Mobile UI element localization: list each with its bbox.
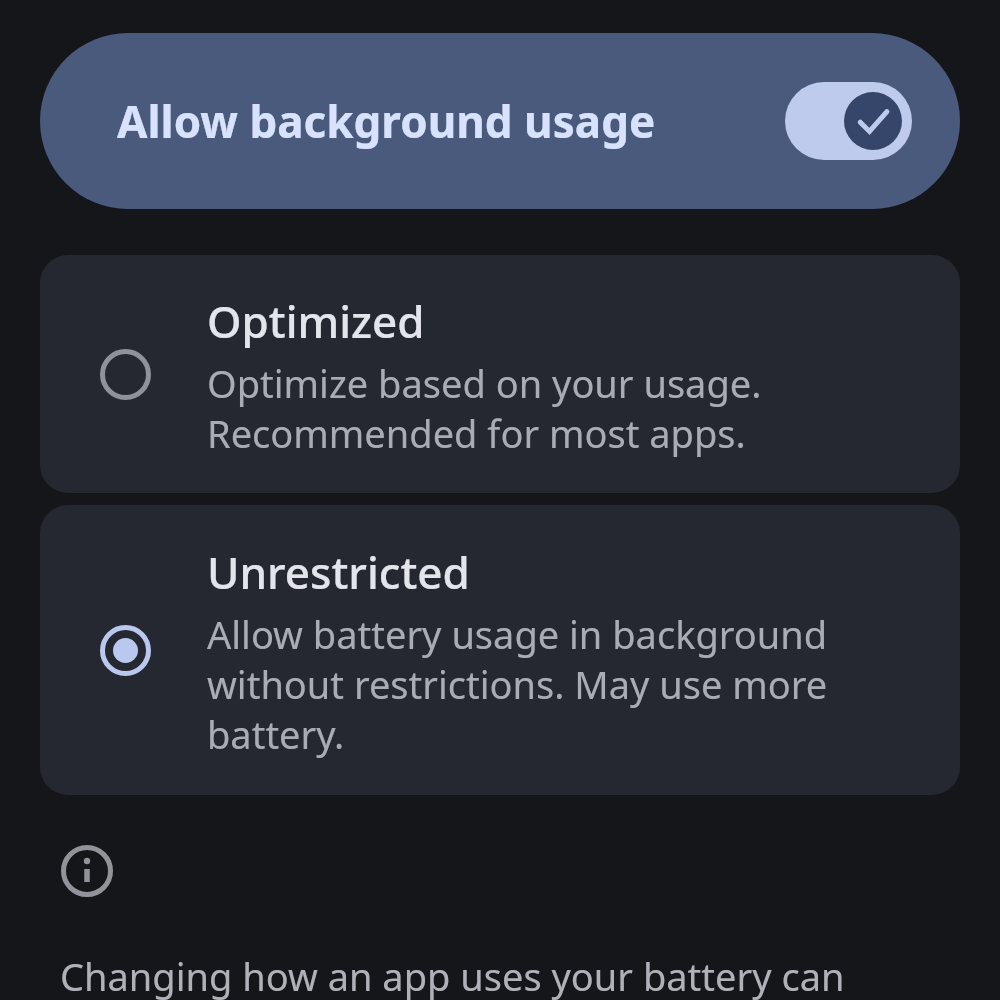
button[interactable]: Unrestricted <box>40 505 960 795</box>
staticText: Changing how an app uses your battery ca… <box>60 950 845 1000</box>
staticText: Allow background usage <box>117 91 656 151</box>
staticText: without restrictions. May use more <box>207 658 828 708</box>
staticText: Recommended for most apps. <box>207 407 746 457</box>
staticText: battery. <box>207 708 345 758</box>
staticText: Optimized <box>207 291 425 351</box>
button[interactable]: Optimized <box>40 255 960 493</box>
button[interactable] <box>785 82 912 160</box>
staticText: Optimize based on your usage. <box>207 357 762 407</box>
staticText: Unrestricted <box>207 542 470 602</box>
staticText: Allow battery usage in background <box>207 608 828 658</box>
button[interactable]: Allow background usage <box>40 33 960 209</box>
